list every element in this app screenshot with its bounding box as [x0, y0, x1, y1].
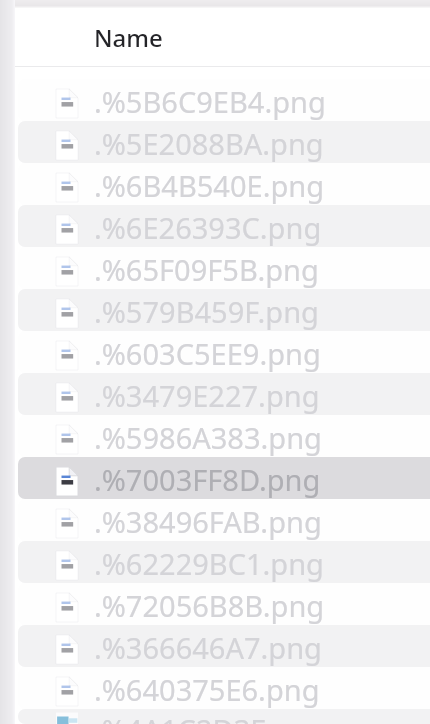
staticText: .%62229BC1.png [94, 544, 324, 583]
staticText: .%5E2088BA.png [94, 124, 324, 163]
button[interactable]: .%62229BC1.png [18, 541, 430, 583]
button[interactable]: .%5986A383.png [18, 415, 430, 457]
button[interactable]: .%366646A7.png [18, 625, 430, 667]
button[interactable]: .%6B4B540E.png [18, 163, 430, 205]
staticText: .%6B4B540E.png [94, 166, 324, 205]
staticText: .%579B459F.png [94, 292, 319, 331]
staticText: .%38496FAB.png [94, 502, 322, 541]
button[interactable]: .%640375E6.png [18, 667, 430, 709]
button[interactable]: .%38496FAB.png [18, 499, 430, 541]
staticText: .%5B6C9EB4.png [94, 82, 326, 121]
button[interactable]: .%6E26393C.png [18, 205, 430, 247]
staticText: .%366646A7.png [94, 628, 322, 667]
button[interactable]: .%72056B8B.png [18, 583, 430, 625]
staticText: .%640375E6.png [94, 670, 320, 709]
staticText: Name [94, 21, 163, 54]
button[interactable]: .%5E2088BA.png [18, 121, 430, 163]
staticText: .%65F09F5B.png [94, 250, 319, 289]
button[interactable]: .%5B6C9EB4.png [18, 79, 430, 121]
button[interactable]: .%7003FF8D.png [18, 457, 430, 499]
staticText: .%4A1C2D3E.png [94, 710, 328, 724]
button[interactable]: .%579B459F.png [18, 289, 430, 331]
button[interactable]: .%3479E227.png [18, 373, 430, 415]
staticText: .%603C5EE9.png [94, 334, 321, 373]
button[interactable]: .%4A1C2D3E.png [18, 709, 430, 724]
staticText: .%72056B8B.png [94, 586, 325, 625]
staticText: .%6E26393C.png [94, 208, 322, 247]
button[interactable]: .%603C5EE9.png [18, 331, 430, 373]
button[interactable]: .%65F09F5B.png [18, 247, 430, 289]
staticText: .%5986A383.png [94, 418, 322, 457]
staticText: .%3479E227.png [94, 376, 320, 415]
staticText: .%7003FF8D.png [94, 460, 321, 499]
